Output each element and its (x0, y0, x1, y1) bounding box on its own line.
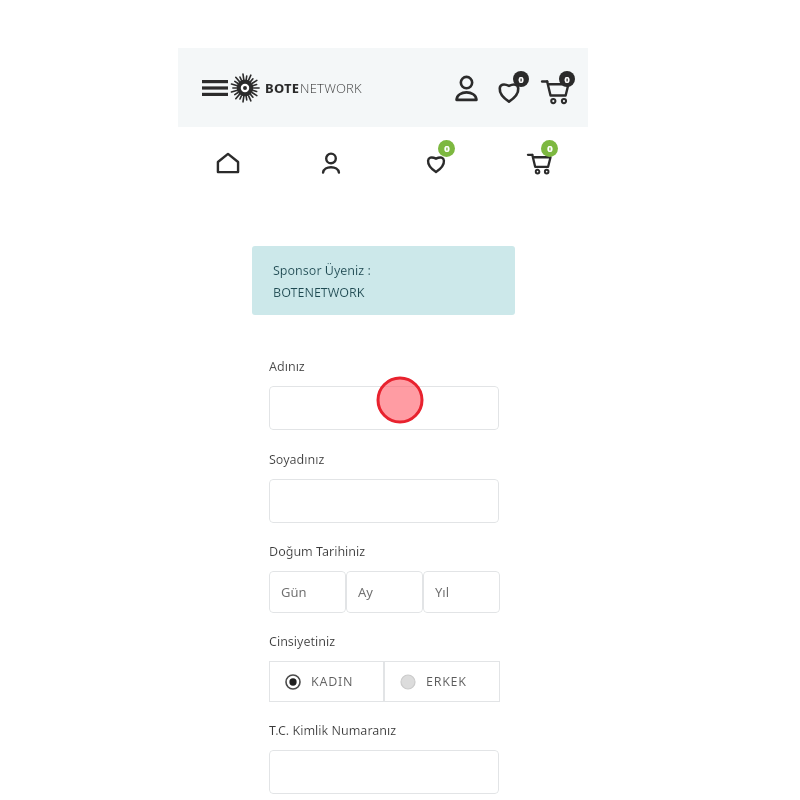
staticText: Ay (358, 583, 373, 601)
button[interactable]: Account (309, 141, 353, 185)
button[interactable]: Favorites (492, 68, 536, 112)
button[interactable]: Ay (346, 571, 423, 613)
button[interactable]: Sponsor Üyeniz : (252, 246, 515, 315)
staticText: Sponsor Üyeniz : (273, 262, 371, 279)
staticText: 0 (547, 142, 553, 155)
staticText: ERKEK (426, 673, 467, 690)
staticText: Adınız (269, 358, 305, 375)
staticText: KADIN (311, 673, 354, 690)
button[interactable]: Menu (193, 66, 237, 110)
button[interactable]: BOTE (230, 70, 362, 106)
button[interactable] (269, 750, 499, 794)
staticText: Gün (281, 583, 307, 601)
button[interactable]: KADIN (269, 661, 384, 702)
staticText: NETWORK (300, 79, 362, 97)
staticText: Soyadınız (269, 451, 325, 468)
staticText: Yıl (435, 583, 450, 601)
button[interactable]: Home (206, 141, 250, 185)
staticText: 0 (444, 142, 450, 155)
button[interactable]: ERKEK (384, 661, 500, 702)
button[interactable] (269, 386, 499, 430)
button[interactable]: Cart (517, 137, 565, 185)
staticText: 0 (564, 73, 570, 85)
button[interactable]: Gün (269, 571, 346, 613)
staticText: BOTE (265, 79, 300, 97)
button[interactable]: Yıl (423, 571, 500, 613)
button[interactable] (269, 479, 499, 523)
button[interactable]: Cart (538, 68, 582, 112)
staticText: T.C. Kimlik Numaranız (269, 722, 397, 739)
button[interactable]: Favorites (414, 137, 462, 185)
staticText: Doğum Tarihiniz (269, 543, 366, 560)
staticText: BOTENETWORK (273, 284, 365, 301)
staticText: 0 (518, 73, 524, 85)
staticText: Cinsiyetiniz (269, 633, 336, 650)
button[interactable]: Account (446, 68, 486, 108)
